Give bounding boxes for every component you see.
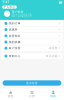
button[interactable]: 我的订单 (1, 20, 63, 26)
button[interactable]: 账户设置 (1, 45, 63, 51)
staticText: 首页 (8, 95, 14, 98)
staticText: 分类 (29, 95, 35, 98)
staticText: ID:12345678 (12, 14, 32, 17)
button[interactable]: 退出登录 (3, 80, 61, 86)
staticText: 我的收藏 (9, 40, 21, 44)
button[interactable]: 首页 (0, 88, 21, 100)
staticText: 优惠券 (9, 28, 18, 31)
staticText: 未设置 (49, 47, 58, 50)
button[interactable]: 收货地址 (1, 33, 63, 39)
staticText: 用户昵称 (12, 10, 24, 13)
staticText: 账户设置 (9, 47, 21, 50)
button[interactable]: 我的 (43, 88, 64, 100)
button[interactable]: 我的收藏 (1, 39, 63, 45)
staticText: ▮▮▮ (58, 1, 61, 4)
staticText: 9:41 (3, 0, 10, 4)
staticText: 常见问题 (46, 54, 58, 58)
staticText: 我的订单 (9, 22, 21, 25)
staticText: 个人中心 (3, 5, 15, 9)
staticText: 退出登录 (26, 81, 38, 85)
button[interactable]: 优惠券 (1, 27, 63, 32)
button[interactable]: 分类 (21, 88, 43, 100)
staticText: 帮助中心 (9, 54, 21, 58)
staticText: 我的 (50, 95, 56, 98)
staticText: 收货地址 (9, 34, 21, 37)
button[interactable]: 帮助中心 (1, 53, 63, 59)
